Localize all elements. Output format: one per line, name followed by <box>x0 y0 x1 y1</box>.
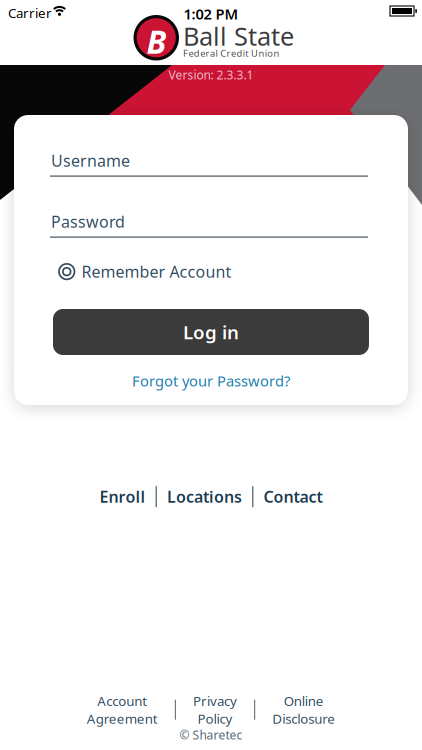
staticText: Password <box>51 211 125 232</box>
staticText: Log in <box>183 320 239 344</box>
staticText: Policy <box>197 710 232 727</box>
staticText: Disclosure <box>272 710 335 727</box>
button[interactable]: Privacy <box>193 692 237 727</box>
staticText: Online <box>284 692 324 710</box>
button[interactable]: Locations <box>167 486 242 507</box>
staticText: Locations <box>167 486 242 507</box>
staticText: Federal Credit Union <box>183 47 280 59</box>
staticText: Username <box>51 150 130 171</box>
staticText: Contact <box>263 486 322 507</box>
button[interactable]: Account <box>87 692 158 727</box>
staticText: Remember Account <box>81 261 231 282</box>
staticText: Privacy <box>193 692 237 710</box>
button[interactable]: Forgot your Password? <box>14 371 408 390</box>
button[interactable]: Enroll <box>99 486 145 507</box>
staticText: Carrier <box>8 4 52 22</box>
button[interactable]: Contact <box>263 486 322 507</box>
staticText: Agreement <box>87 710 158 727</box>
staticText: Version: 2.3.3.1 <box>168 67 253 83</box>
button[interactable]: Remember Account <box>58 261 231 282</box>
staticText: Enroll <box>99 486 145 507</box>
staticText: Forgot your Password? <box>132 371 290 390</box>
staticText: © Sharetec <box>179 727 242 743</box>
button[interactable]: Log in <box>53 309 369 355</box>
staticText: Ball State <box>183 19 294 53</box>
staticText: Account <box>97 692 147 710</box>
staticText: 1:02 PM <box>183 4 238 23</box>
staticText: B <box>146 20 166 62</box>
button[interactable]: Online <box>272 692 335 727</box>
